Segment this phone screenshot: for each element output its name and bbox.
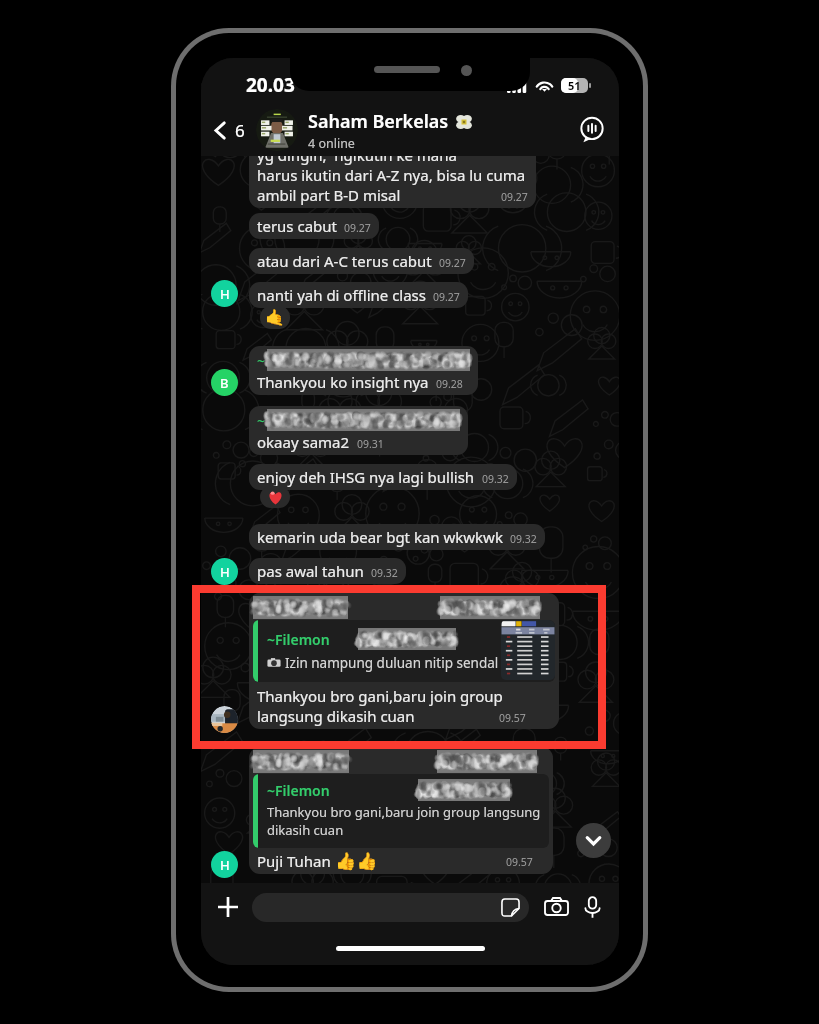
staticText: nanti yah di offline class xyxy=(257,285,426,305)
staticText: Thankyou bro gani,baru join group xyxy=(257,686,503,706)
staticText: H xyxy=(220,285,230,303)
staticText: 51 xyxy=(568,78,581,93)
staticText: 09.27 xyxy=(501,190,528,204)
staticText: H xyxy=(220,856,230,874)
button[interactable]: Heart message xyxy=(260,486,290,508)
button[interactable]: Contact avatar xyxy=(211,558,238,585)
button[interactable]: Contact avatar xyxy=(211,369,238,396)
button[interactable]: terus cabut xyxy=(249,213,379,239)
button[interactable]: Group photo xyxy=(256,109,298,151)
button[interactable]: Attach xyxy=(211,890,245,924)
staticText: ~ xyxy=(257,351,266,370)
staticText: 👍👍 xyxy=(335,851,378,871)
staticText: 09.32 xyxy=(371,566,398,580)
button[interactable]: ~ xyxy=(249,406,468,455)
staticText: ~Filemon xyxy=(267,630,330,649)
staticText: 20.03 xyxy=(246,72,295,98)
staticText: Izin nampung duluan nitip sendal xyxy=(285,654,499,672)
staticText: 09.32 xyxy=(510,532,537,546)
staticText: Thankyou ko insight nya xyxy=(257,372,429,392)
staticText: ~Filemon xyxy=(267,781,330,800)
staticText: enjoy deh IHSG nya lagi bullish xyxy=(257,467,475,487)
button[interactable]: kemarin uda bear bgt kan wkwkwk xyxy=(249,524,545,550)
button[interactable]: Scroll to bottom xyxy=(576,823,611,858)
staticText: 09.28 xyxy=(436,377,463,391)
staticText: langsung dikasih cuan xyxy=(257,706,415,726)
staticText: harus ikutin dari A-Z nya, bisa lu cuma xyxy=(257,165,526,185)
staticText: pas awal tahun xyxy=(257,561,364,581)
staticText: 09.27 xyxy=(439,256,466,270)
staticText: dikasih cuan xyxy=(267,821,344,839)
button[interactable]: Camera xyxy=(540,891,572,923)
staticText: 09.27 xyxy=(344,221,371,235)
button[interactable]: nanti yah di offline class xyxy=(249,282,468,308)
staticText: atau dari A-C terus cabut xyxy=(257,251,432,271)
staticText: Puji Tuhan xyxy=(257,851,335,871)
staticText: B xyxy=(220,374,229,392)
button[interactable]: atau dari A-C terus cabut xyxy=(249,248,474,274)
staticText: yg dingin, ngikutin ke mana xyxy=(257,145,457,165)
staticText: Thankyou bro gani,baru join group langsu… xyxy=(267,803,541,821)
button[interactable]: ~Filemon xyxy=(249,747,553,874)
staticText: 09.27 xyxy=(433,290,460,304)
staticText: 09.57 xyxy=(506,855,533,869)
button[interactable]: Contact avatar xyxy=(211,706,238,733)
other: Sticker xyxy=(501,898,520,917)
button[interactable]: Voice chat xyxy=(575,113,609,147)
button[interactable]: ~ xyxy=(249,346,478,395)
staticText: okaay sama2 xyxy=(257,432,350,452)
button[interactable]: Back xyxy=(208,119,248,142)
button[interactable]: ~Filemon xyxy=(249,593,559,729)
staticText: 09.57 xyxy=(499,711,526,725)
staticText: 4 online xyxy=(308,135,355,152)
button[interactable]: Contact avatar xyxy=(211,280,238,307)
button[interactable]: Voice message xyxy=(577,892,607,922)
staticText: ~ xyxy=(257,411,266,430)
staticText: kemarin uda bear bgt kan wkwkwk xyxy=(257,527,503,547)
staticText: 09.31 xyxy=(357,437,384,451)
button[interactable]: Emoji message xyxy=(260,306,290,329)
staticText: terus cabut xyxy=(257,216,337,236)
button[interactable]: Contact avatar xyxy=(211,851,238,878)
button[interactable]: Saham Berkelas xyxy=(308,109,575,152)
button[interactable]: yg dingin, ngikutin ke mana xyxy=(249,142,536,208)
staticText: 🤙 xyxy=(265,308,285,327)
button[interactable]: enjoy deh IHSG nya lagi bullish xyxy=(249,464,517,490)
staticText: 09.32 xyxy=(482,472,509,486)
staticText: 6 xyxy=(235,119,245,142)
staticText: H xyxy=(220,563,230,581)
staticText: ambil part B-D misal xyxy=(257,185,401,205)
staticText: Saham Berkelas xyxy=(308,109,449,134)
button[interactable]: Sticker xyxy=(252,893,529,922)
button[interactable]: pas awal tahun xyxy=(249,558,406,584)
